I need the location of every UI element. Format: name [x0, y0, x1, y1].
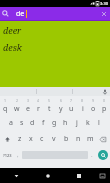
button[interactable]: a [6, 114, 16, 131]
button[interactable]: Backspace [96, 131, 110, 147]
staticText: m [87, 134, 94, 144]
button[interactable]: 5 [44, 97, 55, 114]
staticText: p [102, 104, 107, 114]
staticText: 2 [16, 98, 19, 103]
staticText: d [30, 118, 35, 128]
button[interactable]: 7 [66, 97, 77, 114]
button[interactable]: c [36, 131, 48, 147]
staticText: n [76, 134, 81, 144]
staticText: desk [3, 41, 22, 53]
staticText: j [76, 118, 78, 128]
button[interactable]: 2 [11, 97, 22, 114]
staticText: 6 [60, 98, 63, 103]
button[interactable]: 0 [99, 97, 110, 114]
staticText: o [91, 104, 96, 114]
staticText: de [16, 9, 25, 19]
staticText: 4 [37, 98, 40, 103]
staticText: t [48, 104, 51, 114]
button[interactable]: d [27, 114, 38, 131]
staticText: f [42, 118, 45, 128]
button[interactable]: n [72, 131, 84, 147]
button[interactable]: deer [0, 21, 110, 38]
staticText: 0 [103, 98, 106, 103]
button[interactable]: 4 [33, 97, 44, 114]
staticText: ?123 [3, 153, 12, 158]
staticText: 5 [48, 98, 51, 103]
staticText: deer [3, 24, 22, 36]
button[interactable]: Recent apps [63, 168, 94, 183]
button[interactable]: Home [32, 168, 63, 183]
button[interactable]: Close keyboard [0, 168, 32, 183]
button[interactable]: Voice input [102, 89, 108, 95]
staticText: h [63, 118, 68, 128]
button[interactable]: Switch keyboard [94, 168, 110, 183]
button[interactable]: 1 [0, 97, 11, 114]
staticText: 7 [70, 98, 73, 103]
staticText: k [86, 118, 90, 128]
staticText: s [20, 118, 24, 128]
button[interactable]: Shift [0, 131, 14, 147]
staticText: v [52, 134, 56, 144]
button[interactable]: desk [0, 38, 110, 55]
button[interactable]: 3 [22, 97, 33, 114]
staticText: u [69, 104, 74, 114]
staticText: b [64, 134, 69, 144]
staticText: a [9, 118, 13, 128]
staticText: r [37, 104, 40, 114]
button[interactable]: 9 [88, 97, 99, 114]
staticText: q [3, 104, 8, 114]
staticText: 9 [92, 98, 95, 103]
button[interactable]: k [82, 114, 93, 131]
button[interactable]: f [38, 114, 49, 131]
staticText: 1 [4, 98, 7, 103]
staticText: l [98, 118, 100, 128]
button[interactable]: Clear query [100, 10, 108, 18]
button[interactable]: g [49, 114, 60, 131]
staticText: 3 [27, 98, 30, 103]
button[interactable]: , [14, 147, 22, 163]
button[interactable]: ?123 [0, 147, 14, 163]
button[interactable]: 8 [77, 97, 88, 114]
button[interactable]: 6 [55, 97, 66, 114]
button[interactable]: j [71, 114, 82, 131]
staticText: i [82, 104, 84, 114]
button[interactable]: l [93, 114, 104, 131]
button[interactable]: s [16, 114, 27, 131]
staticText: , [17, 151, 19, 159]
staticText: w [14, 104, 20, 114]
button[interactable]: x [25, 131, 36, 147]
staticText: y [59, 104, 63, 114]
button[interactable]: Search [98, 150, 108, 160]
button[interactable]: h [60, 114, 71, 131]
staticText: e [26, 104, 30, 114]
staticText: 3:30 [100, 1, 108, 6]
button[interactable]: z [14, 131, 25, 147]
staticText: g [52, 118, 57, 128]
button[interactable]: v [48, 131, 60, 147]
button[interactable]: b [60, 131, 72, 147]
staticText: 8 [81, 98, 84, 103]
button[interactable]: Search icon [2, 10, 9, 17]
staticText: x [29, 134, 33, 144]
staticText: c [40, 134, 44, 144]
button[interactable]: Search icon [0, 7, 110, 20]
staticText: z [18, 134, 22, 144]
staticText: . [91, 151, 93, 159]
button[interactable]: m [84, 131, 96, 147]
